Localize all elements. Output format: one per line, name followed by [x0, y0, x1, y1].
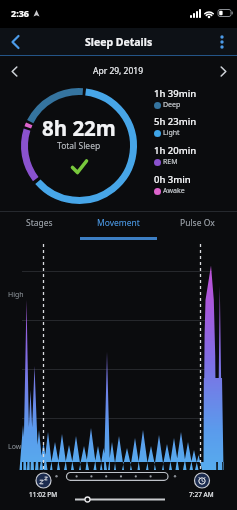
staticText: Awake	[163, 186, 185, 196]
staticText: 1h 39min	[154, 87, 197, 100]
staticText: Pulse Ox	[180, 217, 215, 229]
staticText: 2:36	[11, 7, 29, 19]
staticText: Sleep Details	[85, 35, 153, 49]
button[interactable]	[0, 28, 30, 56]
button[interactable]	[207, 28, 237, 56]
staticText: Deep	[163, 100, 181, 110]
button[interactable]: Pulse Ox	[158, 211, 237, 235]
button[interactable]: Stages	[0, 211, 79, 235]
staticText: 7:27 AM	[189, 490, 214, 499]
staticText: Total Sleep	[57, 140, 101, 152]
staticText: REM	[163, 157, 178, 167]
staticText: Light	[163, 128, 180, 138]
staticText: 8h 22m	[42, 114, 116, 138]
staticText: Movement	[97, 217, 140, 229]
button[interactable]	[209, 56, 237, 86]
button[interactable]	[0, 56, 28, 86]
staticText: Apr 29, 2019	[93, 65, 144, 77]
staticText: Low	[8, 442, 22, 452]
staticText: 5h 23min	[154, 115, 197, 128]
button[interactable]: Movement	[79, 211, 158, 235]
staticText: High	[8, 290, 24, 300]
staticText: Stages	[26, 217, 53, 229]
staticText: 11:02 PM	[29, 490, 58, 499]
staticText: 1h 20min	[154, 144, 197, 157]
staticText: 0h 3min	[154, 173, 191, 186]
